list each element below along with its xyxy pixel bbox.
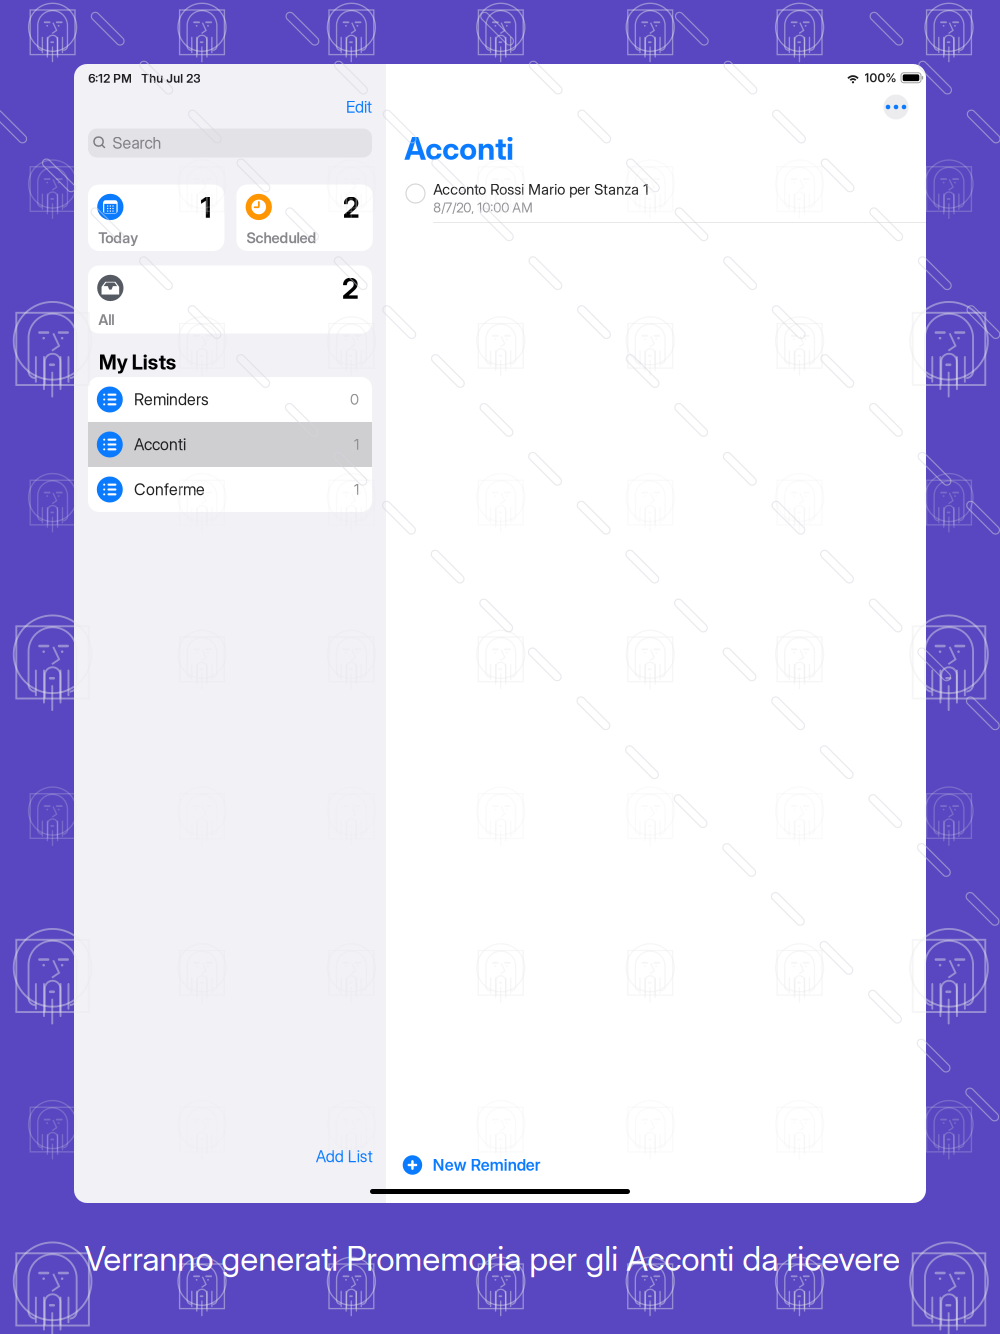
- staticText: Search: [112, 133, 161, 153]
- staticText: Edit: [346, 97, 372, 117]
- staticText: Verranno generati Promemoria per gli Acc…: [84, 1238, 900, 1279]
- staticText: Acconto Rossi Mario per Stanza 1: [433, 180, 648, 198]
- staticText: 100%: [864, 70, 896, 85]
- staticText: All: [98, 311, 114, 329]
- staticText: Scheduled: [247, 229, 317, 247]
- staticText: Today: [98, 229, 138, 247]
- staticText: 1: [200, 191, 211, 224]
- button[interactable]: Reminders: [88, 377, 372, 422]
- staticText: 8/7/20, 10:00 AM: [433, 199, 532, 216]
- staticText: Acconti: [404, 130, 514, 167]
- button[interactable]: Acconto Rossi Mario per Stanza 1: [386, 175, 926, 223]
- staticText: 6:12 PM: [88, 71, 132, 85]
- button[interactable]: 1: [88, 184, 224, 251]
- button[interactable]: Acconti: [88, 422, 372, 467]
- staticText: Thu Jul 23: [141, 71, 200, 85]
- staticText: 1: [354, 481, 359, 498]
- button[interactable]: Conferme: [88, 467, 372, 512]
- staticText: Conferme: [134, 480, 205, 499]
- button[interactable]: Search: [88, 128, 372, 157]
- staticText: 0: [350, 391, 359, 408]
- button[interactable]: 2: [88, 265, 372, 333]
- staticText: 2: [342, 272, 359, 305]
- button[interactable]: Edit: [282, 94, 372, 120]
- staticText: Add List: [316, 1147, 373, 1166]
- staticText: 1: [354, 436, 359, 453]
- button[interactable]: More options: [883, 94, 908, 119]
- button[interactable]: Add List: [253, 1143, 373, 1169]
- staticText: New Reminder: [433, 1155, 541, 1175]
- staticText: 2: [343, 191, 360, 224]
- staticText: Acconti: [134, 435, 186, 454]
- button[interactable]: 2: [236, 184, 373, 251]
- staticText: My Lists: [99, 350, 176, 374]
- staticText: Reminders: [134, 390, 209, 409]
- button[interactable]: New Reminder: [403, 1152, 541, 1178]
